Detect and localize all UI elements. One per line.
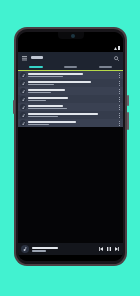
button[interactable]: More options — [117, 95, 121, 103]
button[interactable]: More options — [18, 79, 123, 87]
button[interactable] — [88, 63, 123, 71]
button[interactable]: Open navigation menu — [21, 54, 28, 61]
button[interactable]: More options — [117, 87, 121, 95]
button[interactable]: More options — [18, 119, 123, 127]
button[interactable]: More options — [117, 111, 121, 119]
button[interactable]: More options — [18, 103, 123, 111]
button[interactable]: More options — [18, 71, 123, 79]
button[interactable]: Search — [112, 54, 120, 62]
button[interactable]: Play — [106, 246, 112, 252]
button[interactable]: More options — [18, 111, 123, 119]
button[interactable]: Previous track — [98, 246, 104, 252]
button[interactable]: More options — [117, 119, 121, 127]
button[interactable] — [18, 63, 53, 71]
button[interactable]: Previous track — [18, 243, 123, 255]
button[interactable]: More options — [18, 95, 123, 103]
button[interactable]: More options — [117, 103, 121, 111]
button[interactable] — [53, 63, 88, 71]
button[interactable]: More options — [18, 87, 123, 95]
button[interactable]: Next track — [114, 246, 120, 252]
button[interactable]: More options — [117, 79, 121, 87]
button[interactable]: More options — [117, 71, 121, 79]
